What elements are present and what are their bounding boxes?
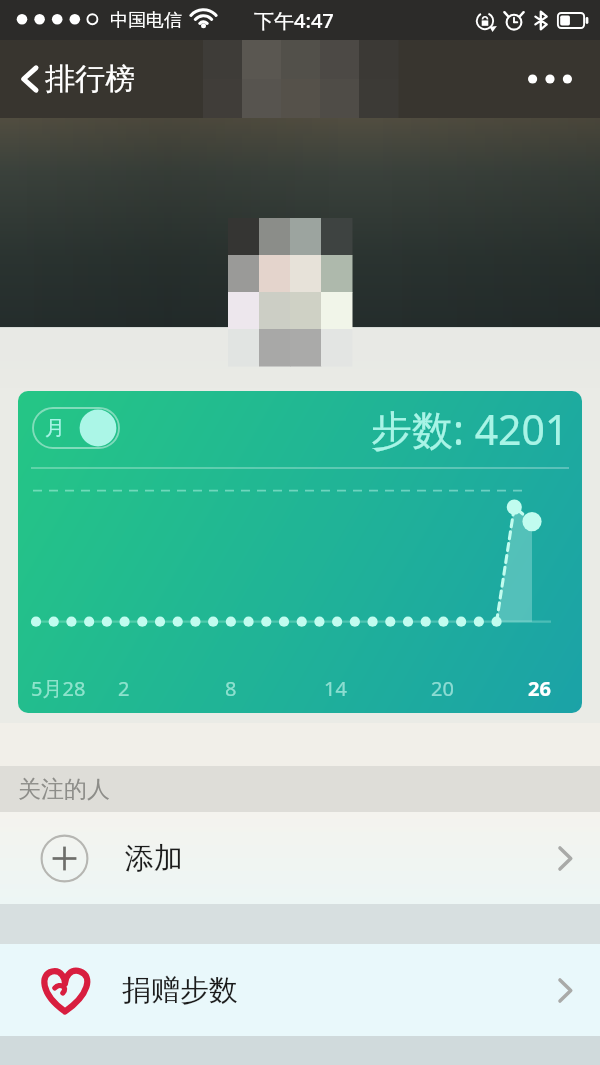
staticText: 添加 xyxy=(125,840,183,877)
staticText: 2 xyxy=(118,675,130,702)
staticText: 下午4:47 xyxy=(254,7,334,34)
staticText: 捐赠步数 xyxy=(122,972,238,1009)
staticText: 5月28 xyxy=(31,675,86,702)
button[interactable]: More options xyxy=(518,63,582,95)
button[interactable]: 添加 xyxy=(0,812,600,904)
staticText: 排行榜 xyxy=(45,60,135,98)
staticText: 26 xyxy=(528,675,551,702)
staticText: 步数: 4201 xyxy=(371,401,569,457)
staticText: 关注的人 xyxy=(18,775,110,804)
button[interactable]: 月 xyxy=(18,391,582,713)
staticText: 20 xyxy=(431,675,454,702)
button[interactable]: 月 xyxy=(32,407,120,449)
staticText: 8 xyxy=(225,675,237,702)
staticText: 月 xyxy=(45,416,65,441)
staticText: 中国电信 xyxy=(110,9,182,32)
staticText: 14 xyxy=(324,675,347,702)
button[interactable]: 捐赠步数 xyxy=(0,944,600,1036)
button[interactable]: Back xyxy=(14,52,141,106)
